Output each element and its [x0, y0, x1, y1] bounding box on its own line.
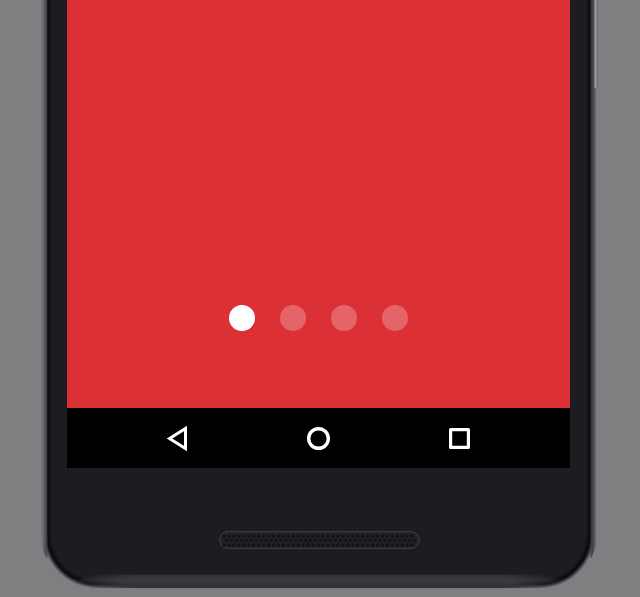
button[interactable]: Page 4: [382, 305, 408, 331]
button[interactable]: Page 1: [229, 305, 255, 331]
button[interactable]: Home: [298, 418, 338, 458]
button[interactable]: Page 2: [280, 305, 306, 331]
button[interactable]: Back: [157, 418, 197, 458]
button[interactable]: Page 3: [331, 305, 357, 331]
button[interactable]: Recent apps: [439, 418, 479, 458]
button[interactable]: Power: [594, 0, 598, 88]
